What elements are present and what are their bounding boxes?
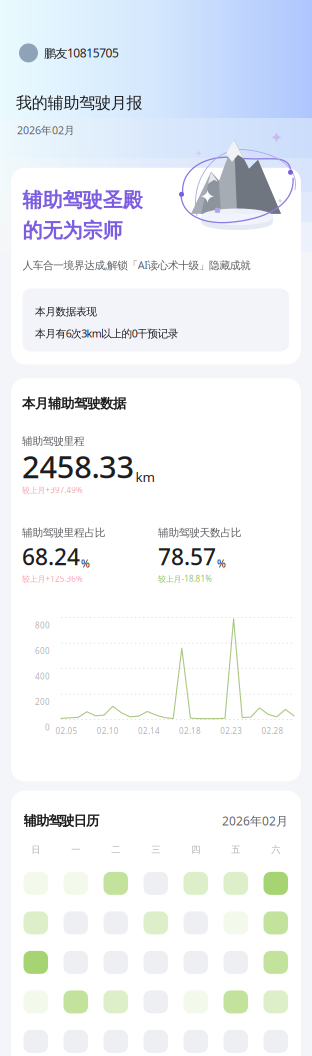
staticText: 2026年02月 [17, 123, 75, 137]
staticText: 本月数据表现 [35, 305, 97, 318]
staticText: 辅助驾驶里程 [22, 435, 85, 448]
staticText: 800 [35, 620, 50, 631]
staticText: 一 [71, 844, 80, 855]
staticText: 我的辅助驾驶月报 [16, 93, 143, 113]
staticText: 较上月+125.36% [22, 573, 83, 584]
staticText: 鹏友10815705 [44, 45, 119, 61]
staticText: 较上月+397.49% [22, 485, 83, 495]
staticText: 四 [191, 844, 200, 855]
staticText: 02.18 [179, 726, 201, 736]
staticText: 六 [271, 844, 280, 855]
staticText: 2026年02月 [222, 813, 288, 829]
staticText: 02.23 [220, 726, 242, 736]
staticText: 本月辅助驾驶数据 [22, 395, 126, 412]
staticText: 辅助驾驶日历 [23, 812, 99, 829]
button[interactable]: 鹏友10815705 [0, 43, 119, 62]
staticText: 02.14 [138, 726, 160, 736]
staticText: 0 [45, 722, 50, 733]
staticText: 二 [111, 844, 120, 855]
staticText: 的无为宗师 [22, 218, 122, 243]
staticText: % [217, 556, 226, 570]
staticText: 2458.33 [22, 446, 134, 487]
staticText: 02.28 [261, 726, 283, 736]
staticText: 五 [231, 844, 240, 855]
staticText: 78.57 [158, 541, 216, 571]
staticText: 200 [35, 697, 50, 707]
staticText: 辅助驾驶里程占比 [22, 526, 106, 539]
staticText: 辅助驾驶圣殿 [22, 188, 142, 212]
staticText: 400 [35, 671, 50, 682]
staticText: km [135, 468, 154, 486]
staticText: 02.10 [97, 726, 119, 736]
staticText: 68.24 [22, 541, 80, 571]
staticText: 人车合一境界达成,解锁「AI读心术十级」隐藏成就 [22, 258, 251, 272]
staticText: 02.05 [56, 726, 78, 736]
staticText: % [81, 556, 90, 570]
staticText: 辅助驾驶天数占比 [158, 526, 242, 539]
staticText: 三 [151, 844, 160, 855]
staticText: 日 [31, 844, 40, 855]
staticText: 600 [35, 646, 50, 656]
staticText: 较上月-18.81% [158, 573, 212, 584]
staticText: 本月有6次3km以上的0干预记录 [35, 326, 179, 340]
